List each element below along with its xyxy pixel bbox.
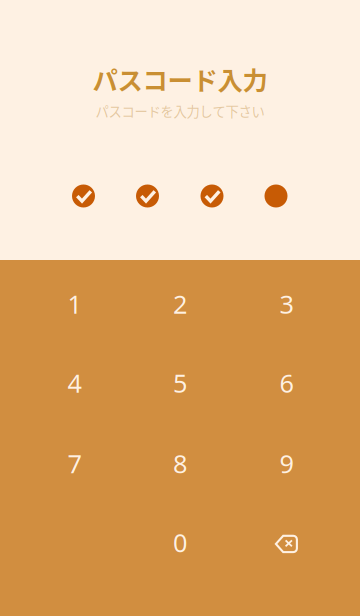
button[interactable]: 0 [127,503,233,581]
staticText: 1 [67,287,81,321]
button[interactable]: 3 [233,265,339,343]
button[interactable]: Delete [233,505,339,583]
button[interactable]: 5 [127,344,233,422]
button[interactable]: 1 [21,265,127,343]
button[interactable]: 2 [127,265,233,343]
staticText: 0 [173,525,187,560]
staticText: パスコード入力 [92,61,267,97]
staticText: 6 [279,366,293,400]
staticText: パスコードを入力して下さい [95,101,264,121]
staticText: 8 [173,446,187,481]
staticText: 5 [173,366,187,400]
button[interactable]: 6 [233,344,339,422]
staticText: 2 [173,287,187,321]
staticText: 3 [279,287,293,321]
button[interactable]: 9 [233,424,339,502]
button[interactable]: 7 [21,424,127,502]
staticText: 9 [279,446,293,481]
button[interactable]: 8 [127,424,233,502]
staticText: 4 [67,366,81,400]
staticText: 7 [67,446,81,481]
button[interactable]: 4 [21,344,127,422]
